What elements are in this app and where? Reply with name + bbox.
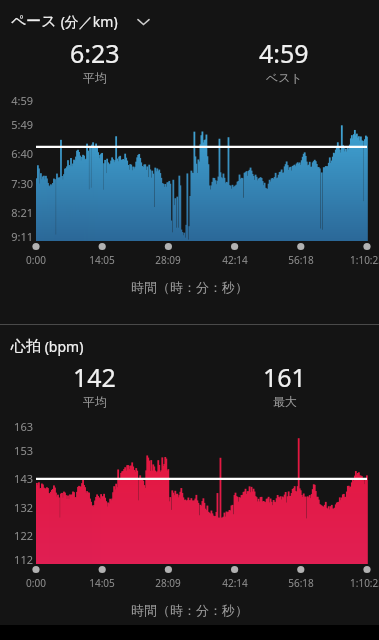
staticText: 平均 [83, 70, 107, 85]
staticText: 時間（時：分：秒） [0, 602, 379, 618]
staticText: 56:18 [288, 253, 314, 267]
staticText: 56:18 [288, 576, 314, 590]
staticText: 4:59 [259, 36, 309, 70]
staticText: ベスト [266, 70, 303, 85]
staticText: 平均 [83, 394, 107, 409]
staticText: 122 [14, 528, 33, 543]
staticText: 最大 [273, 394, 297, 409]
button[interactable]: Select metric [130, 8, 156, 34]
staticText: 161 [263, 360, 306, 394]
staticText: 14:05 [89, 253, 115, 267]
staticText: 153 [14, 443, 33, 458]
staticText: 163 [14, 419, 33, 434]
staticText: 112 [14, 552, 33, 567]
staticText: 5:49 [11, 117, 33, 132]
staticText: 142 [73, 360, 116, 394]
staticText: 心拍 [11, 337, 41, 356]
staticText: 9:11 [11, 229, 33, 244]
button[interactable]: 心拍 [0, 325, 379, 625]
staticText: 6:40 [11, 146, 33, 161]
staticText: 132 [14, 500, 33, 515]
staticText: 7:30 [11, 176, 33, 191]
staticText: 8:21 [11, 205, 33, 220]
staticText: 28:09 [155, 253, 181, 267]
staticText: 42:14 [222, 576, 248, 590]
staticText: 1:10:23 [350, 253, 379, 267]
staticText: 14:05 [89, 576, 115, 590]
staticText: 28:09 [155, 576, 181, 590]
staticText: 1:10:23 [350, 576, 379, 590]
staticText: (分／km) [57, 12, 118, 31]
staticText: 6:23 [70, 36, 120, 70]
staticText: (bpm) [41, 337, 84, 356]
staticText: 4:59 [11, 93, 33, 108]
staticText: 時間（時：分：秒） [0, 279, 379, 295]
staticText: 42:14 [222, 253, 248, 267]
staticText: 0:00 [26, 576, 46, 590]
staticText: 0:00 [26, 253, 46, 267]
button[interactable]: ペース [0, 0, 379, 324]
staticText: ペース [11, 12, 57, 31]
staticText: 143 [14, 471, 33, 486]
